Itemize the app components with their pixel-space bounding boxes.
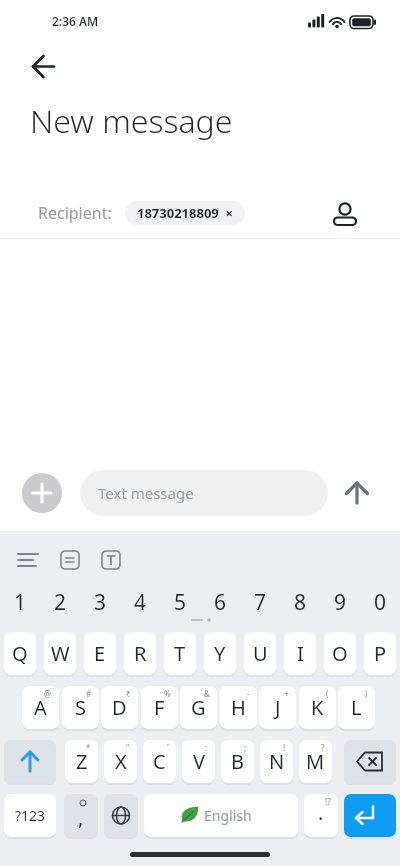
staticText: English bbox=[204, 806, 252, 825]
staticText: ! bbox=[283, 742, 286, 753]
staticText: L bbox=[351, 694, 362, 721]
button[interactable]: 18730218809 × bbox=[125, 201, 245, 225]
button[interactable] bbox=[104, 794, 138, 837]
staticText: ? bbox=[321, 742, 325, 753]
staticText: G bbox=[191, 694, 206, 721]
staticText: S bbox=[75, 694, 86, 721]
staticText: & bbox=[204, 688, 210, 699]
button[interactable] bbox=[344, 740, 396, 783]
staticText: D bbox=[112, 694, 127, 721]
button[interactable]: V bbox=[182, 740, 215, 783]
staticText: " bbox=[126, 742, 130, 753]
button[interactable]: !? bbox=[304, 794, 338, 837]
staticText: H bbox=[231, 694, 246, 721]
staticText: 0 bbox=[374, 588, 387, 614]
button[interactable]: K bbox=[299, 686, 336, 729]
staticText: Text message bbox=[98, 483, 194, 503]
button[interactable]: P bbox=[364, 632, 396, 675]
staticText: J bbox=[275, 694, 281, 721]
staticText: ?123 bbox=[15, 806, 46, 825]
button[interactable]: R bbox=[124, 632, 156, 675]
staticText: X bbox=[115, 748, 127, 775]
staticText: Y bbox=[214, 640, 226, 667]
staticText: V bbox=[193, 748, 205, 775]
button[interactable]: I bbox=[284, 632, 316, 675]
staticText: Z bbox=[76, 748, 88, 775]
staticText: 8 bbox=[294, 588, 307, 614]
staticText: 4 bbox=[134, 588, 147, 614]
staticText: B bbox=[231, 748, 244, 775]
button[interactable] bbox=[340, 476, 374, 510]
button[interactable]: O bbox=[324, 632, 356, 675]
staticText: ; bbox=[244, 742, 247, 753]
staticText: ) bbox=[365, 688, 368, 699]
button[interactable]: Text message bbox=[80, 470, 328, 516]
staticText: # bbox=[86, 688, 92, 699]
staticText: * bbox=[86, 742, 91, 753]
staticText: C bbox=[153, 748, 166, 775]
button[interactable] bbox=[328, 192, 364, 232]
staticText: ₹ bbox=[126, 688, 131, 699]
staticText: Recipient: bbox=[38, 202, 112, 224]
staticText: ( bbox=[326, 688, 329, 699]
button[interactable]: X bbox=[104, 740, 137, 783]
staticText: + bbox=[284, 688, 289, 699]
button[interactable]: S bbox=[62, 686, 99, 729]
button[interactable] bbox=[10, 544, 46, 576]
button[interactable] bbox=[344, 794, 396, 837]
button[interactable]: T bbox=[164, 632, 196, 675]
button[interactable]: A bbox=[22, 686, 59, 729]
button[interactable] bbox=[4, 740, 56, 783]
staticText: R bbox=[134, 640, 147, 667]
staticText: Q bbox=[12, 640, 28, 667]
staticText: E bbox=[94, 640, 106, 667]
staticText: @ bbox=[44, 688, 52, 699]
button[interactable]: Q bbox=[4, 632, 36, 675]
button[interactable] bbox=[22, 50, 62, 84]
button[interactable]: J bbox=[259, 686, 296, 729]
button[interactable]: D bbox=[101, 686, 138, 729]
button[interactable]: N bbox=[260, 740, 293, 783]
staticText: % bbox=[164, 688, 171, 699]
button[interactable]: B bbox=[221, 740, 254, 783]
staticText: 2:36 AM bbox=[52, 13, 99, 29]
staticText: 6 bbox=[214, 588, 227, 614]
button[interactable]: ?123 bbox=[4, 794, 56, 837]
staticText: 7 bbox=[254, 588, 267, 614]
button[interactable]: , bbox=[64, 794, 98, 837]
button[interactable]: W bbox=[44, 632, 76, 675]
button[interactable]: English bbox=[144, 794, 298, 837]
staticText: : bbox=[205, 742, 208, 753]
staticText: . bbox=[318, 799, 324, 826]
staticText: I bbox=[297, 640, 304, 667]
staticText: 5 bbox=[174, 588, 187, 614]
staticText: K bbox=[311, 694, 324, 721]
button[interactable]: C bbox=[143, 740, 176, 783]
staticText: U bbox=[253, 640, 268, 667]
button[interactable]: E bbox=[84, 632, 116, 675]
button[interactable]: Y bbox=[204, 632, 236, 675]
button[interactable]: L bbox=[338, 686, 375, 729]
staticText: ' bbox=[167, 742, 169, 753]
staticText: 9 bbox=[334, 588, 347, 614]
staticText: New message bbox=[30, 99, 233, 141]
staticText: T bbox=[174, 640, 186, 667]
staticText: , bbox=[78, 804, 84, 831]
button[interactable]: F bbox=[141, 686, 178, 729]
button[interactable] bbox=[22, 473, 62, 513]
button[interactable] bbox=[52, 544, 88, 576]
staticText: !? bbox=[325, 796, 331, 807]
staticText: A bbox=[34, 694, 47, 721]
staticText: O bbox=[332, 640, 348, 667]
button[interactable]: H bbox=[220, 686, 257, 729]
staticText: F bbox=[154, 694, 165, 721]
button[interactable]: Z bbox=[65, 740, 98, 783]
button[interactable] bbox=[93, 544, 129, 576]
button[interactable]: M bbox=[299, 740, 332, 783]
button[interactable]: U bbox=[244, 632, 276, 675]
staticText: - bbox=[247, 688, 250, 699]
staticText: 2 bbox=[54, 588, 67, 614]
staticText: 3 bbox=[94, 588, 107, 614]
staticText: N bbox=[269, 748, 285, 775]
button[interactable]: G bbox=[180, 686, 217, 729]
